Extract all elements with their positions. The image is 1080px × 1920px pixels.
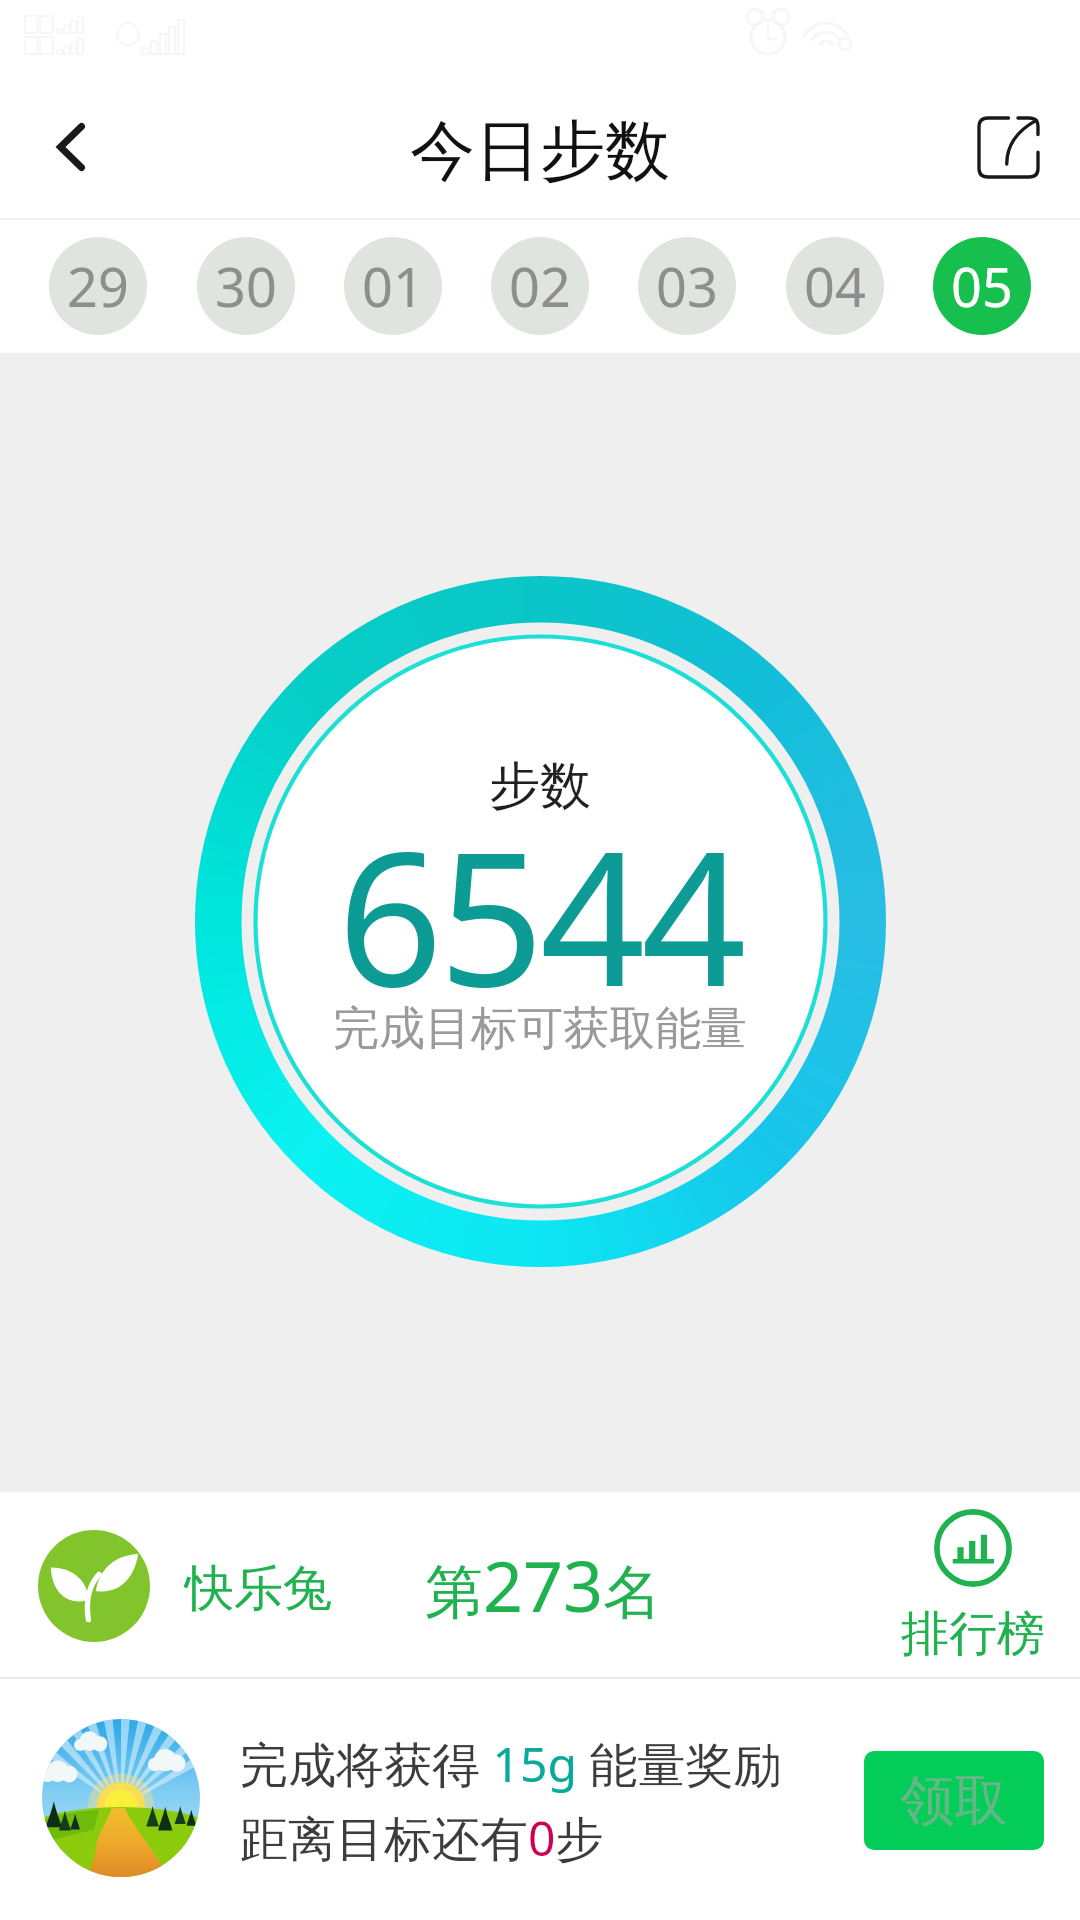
staticText: 第273名 [425,1537,662,1632]
staticText: 排行榜 [901,1604,1045,1664]
staticText: 完成将获得 15g 能量奖励 [240,1731,782,1797]
staticText: 30 [215,249,277,323]
staticText: 29 [67,249,129,323]
staticText: 距离目标还有0步 [240,1805,604,1871]
button[interactable]: 05 [933,237,1031,335]
staticText: 领取 [900,1767,1008,1835]
staticText: 01 [362,249,424,323]
staticText: 05 [951,249,1013,323]
button[interactable]: Back [4,80,138,214]
staticText: 快乐兔 [185,1558,332,1620]
button[interactable]: 03 [638,237,736,335]
button[interactable]: 快乐兔 [0,1492,1080,1678]
staticText: 今日步数 [0,110,1080,192]
staticText: 6544 [0,789,1080,1040]
staticText: 03 [656,249,718,323]
button[interactable]: 30 [197,237,295,335]
staticText: 02 [509,249,571,323]
staticText: 04 [804,249,866,323]
button[interactable]: Leaderboard [895,1509,1050,1664]
button[interactable]: 02 [491,237,589,335]
staticText: 步数 [0,754,1080,818]
staticText: 完成目标可获取能量 [0,1000,1080,1058]
button[interactable]: 04 [786,237,884,335]
button[interactable]: 29 [49,237,147,335]
button[interactable]: 领取 [864,1751,1044,1850]
button[interactable]: 01 [344,237,442,335]
button[interactable]: Share [941,80,1075,214]
